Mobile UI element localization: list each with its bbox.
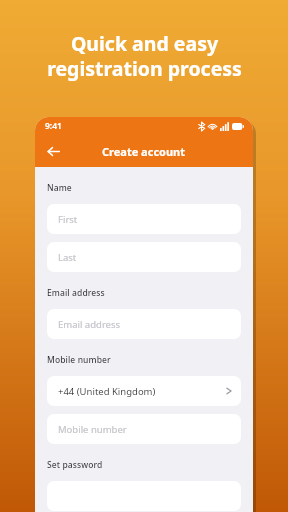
staticText: Quick and easy registration process — [47, 30, 242, 82]
staticText: Create account — [102, 144, 186, 159]
staticText: Mobile number — [47, 354, 111, 366]
button[interactable]: Last — [47, 242, 241, 272]
button[interactable]: First — [47, 204, 241, 234]
button[interactable]: +44 (United Kingdom) — [47, 376, 241, 406]
staticText: Set password — [47, 459, 103, 471]
staticText: Mobile number — [58, 423, 127, 436]
staticText: 9:41 — [45, 120, 62, 132]
staticText: Email address — [47, 287, 105, 299]
staticText: +44 (United Kingdom) — [58, 385, 226, 398]
staticText: Name — [47, 182, 72, 194]
button[interactable]: Mobile number — [47, 414, 241, 444]
staticText: Email address — [58, 318, 121, 331]
staticText: Last — [58, 251, 77, 264]
other: Choose country code — [226, 386, 232, 396]
button[interactable]: Email address — [47, 309, 241, 339]
staticText: First — [58, 213, 78, 226]
button[interactable]: Back — [41, 139, 65, 163]
